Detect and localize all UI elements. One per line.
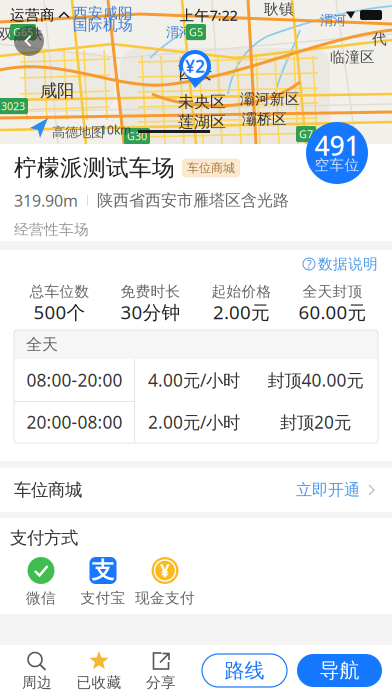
button[interactable]: 车位商城 [0, 468, 392, 512]
staticText: G7 [299, 127, 313, 141]
button[interactable]: 分享 [130, 645, 192, 696]
staticText: 西安咸阳 [73, 4, 133, 22]
button[interactable]: 导航 [297, 654, 382, 687]
staticText: 路线 [224, 658, 264, 683]
staticText: 莲湖区 [178, 112, 226, 132]
staticText: 现金支付 [135, 589, 195, 607]
staticText: 经营性车场 [14, 220, 89, 238]
staticText: G30 [127, 129, 147, 143]
staticText: 全天封顶 [302, 282, 362, 300]
staticText: 耿镇 [264, 0, 294, 18]
staticText: 封顶20元 [280, 410, 351, 433]
staticText: 陕西省西安市雁塔区含光路 [97, 191, 289, 210]
staticText: 车位商城 [187, 161, 235, 175]
staticText: 2.00元/小时 [148, 410, 240, 433]
staticText: ¥ [160, 559, 170, 582]
staticText: 已收藏 [76, 673, 121, 691]
staticText: 20:00-08:00 [26, 410, 122, 433]
staticText: ¥2 [185, 54, 205, 77]
staticText: 渭河 [320, 12, 346, 28]
staticText: 10km [100, 122, 131, 138]
staticText: 运营商 [10, 6, 55, 24]
staticText: 咸阳 [40, 80, 74, 101]
staticText: 西安 [178, 62, 212, 83]
staticText: 319.90m [14, 190, 78, 211]
button[interactable]: Back [12, 24, 46, 58]
staticText: 车位商城 [14, 479, 82, 501]
staticText: 周边 [22, 673, 52, 691]
staticText: 支付方式 [10, 527, 78, 549]
staticText: 微信 [26, 589, 56, 607]
button[interactable]: 周边 [6, 645, 68, 696]
staticText: 立即开通 [296, 480, 360, 500]
staticText: G65 [13, 25, 33, 39]
staticText: 封顶40.00元 [267, 368, 363, 391]
staticText: 60.00元 [298, 300, 366, 324]
staticText: 双照铁 [0, 25, 43, 43]
staticText: ? [306, 256, 311, 272]
staticText: 2.00元 [213, 300, 270, 324]
staticText: 灞河新区 [240, 90, 300, 108]
staticText: 支付宝 [80, 589, 125, 607]
staticText: 3023 [1, 99, 25, 113]
staticText: 空车位 [314, 156, 359, 174]
staticText: 数据说明 [318, 255, 378, 273]
staticText: 柠檬派测试车场 [14, 154, 175, 182]
button[interactable]: ? [303, 256, 378, 272]
staticText: 总车位数 [29, 282, 89, 300]
staticText: 500个 [33, 300, 85, 324]
staticText: 支 [91, 557, 114, 584]
staticText: G5 [189, 25, 203, 39]
staticText: 起始价格 [211, 282, 271, 300]
staticText: 未央区 [178, 92, 226, 112]
staticText: 上午7:22 [179, 5, 237, 25]
staticText: 08:00-20:00 [26, 368, 122, 391]
staticText: 渭河 [166, 24, 192, 40]
staticText: 4.00元/小时 [148, 368, 240, 391]
staticText: 全天 [26, 335, 58, 354]
button[interactable]: 路线 [202, 654, 287, 687]
staticText: 高德地图 [52, 124, 104, 140]
staticText: 分享 [146, 673, 176, 691]
staticText: 491 [314, 128, 359, 163]
button[interactable]: 已收藏 [68, 645, 130, 696]
staticText: 免费时长 [120, 282, 180, 300]
staticText: 30分钟 [120, 300, 180, 324]
staticText: 国际机场 [73, 16, 133, 34]
staticText: 灞桥区 [242, 110, 287, 128]
staticText: 代 [372, 30, 387, 48]
staticText: 导航 [319, 658, 359, 683]
staticText: 临潼区 [330, 48, 375, 66]
